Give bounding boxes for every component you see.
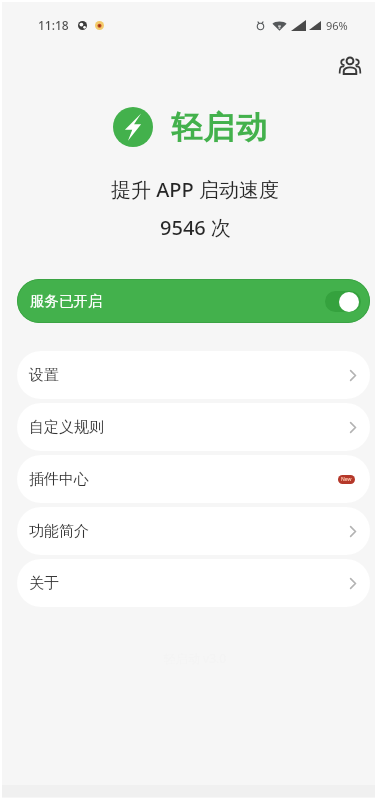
staticText: 设置 [29,366,59,385]
staticText: 自定义规则 [29,418,104,437]
staticText: 功能简介 [29,522,89,541]
staticText: New [341,476,352,483]
button[interactable]: 功能简介 [17,507,370,555]
staticText: 关于 [29,574,59,593]
staticText: 11:18 [38,17,69,33]
button[interactable]: 自定义规则 [17,403,370,451]
button[interactable]: 服务已开启 [17,279,370,323]
button[interactable]: 插件中心 [17,455,370,503]
staticText: 9546 次 [160,214,231,241]
staticText: 插件中心 [29,470,89,489]
button[interactable]: Group members [335,50,365,80]
button[interactable]: 关于 [17,559,370,607]
staticText: 提升 APP 启动速度 [111,176,279,203]
button[interactable]: 设置 [17,351,370,399]
staticText: 轻启动 [171,108,269,147]
staticText: 服务已开启 [30,292,103,310]
staticText: 96% [326,18,348,33]
